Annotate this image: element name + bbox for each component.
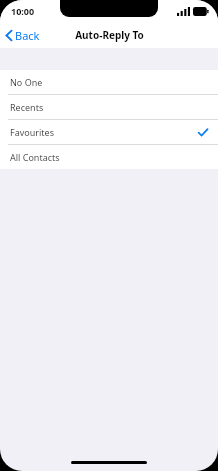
button[interactable]: All Contacts — [0, 145, 218, 169]
button[interactable]: Back — [0, 22, 48, 48]
button[interactable]: No One — [0, 70, 218, 94]
staticText: Auto-Reply To — [75, 28, 144, 42]
staticText: Back — [15, 28, 40, 43]
button[interactable]: Recents — [0, 95, 218, 119]
staticText: Favourites — [10, 126, 54, 138]
staticText: 10:00 — [11, 5, 35, 17]
other: Selected — [198, 128, 208, 137]
staticText: Recents — [10, 101, 44, 113]
button[interactable]: Favourites — [0, 120, 218, 144]
staticText: All Contacts — [10, 151, 60, 163]
staticText: No One — [10, 76, 43, 88]
